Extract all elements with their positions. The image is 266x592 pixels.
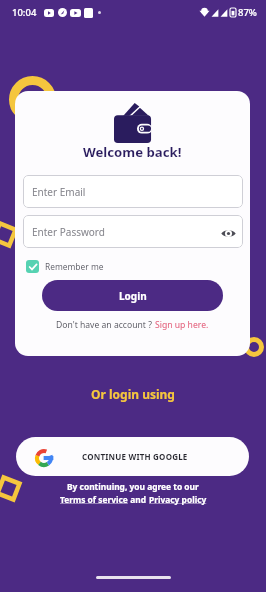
staticText: Or login using xyxy=(91,386,175,402)
button[interactable]: Enter Password xyxy=(23,215,243,248)
button[interactable]: Login xyxy=(42,280,223,311)
staticText: and xyxy=(128,494,149,505)
button[interactable]: CONTINUE WITH GOOGLE xyxy=(16,437,249,476)
staticText: Don't have an account ? xyxy=(56,319,152,331)
button[interactable]: Sign up here. xyxy=(155,319,209,331)
button[interactable]: Privacy policy xyxy=(149,494,207,505)
staticText: Privacy policy xyxy=(149,494,207,505)
staticText: Enter Password xyxy=(32,225,105,239)
staticText: 87% xyxy=(238,6,257,19)
staticText: By continuing, you agree to our xyxy=(67,481,199,492)
staticText: 10:04 xyxy=(12,6,37,19)
staticText: Terms of service xyxy=(60,494,128,505)
button[interactable]: Enter Email xyxy=(23,175,243,208)
button[interactable]: Remember me xyxy=(26,260,104,273)
staticText: CONTINUE WITH GOOGLE xyxy=(82,451,188,462)
staticText: Welcome back! xyxy=(83,143,182,161)
staticText: Login xyxy=(119,289,147,303)
staticText: Enter Email xyxy=(32,185,86,199)
staticText: Sign up here. xyxy=(155,319,209,331)
button[interactable]: Terms of service xyxy=(60,494,128,505)
staticText: Remember me xyxy=(45,261,104,272)
button[interactable]: Show password xyxy=(219,223,237,241)
